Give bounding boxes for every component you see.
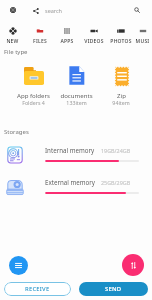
button[interactable]: NEW: [0, 24, 26, 44]
staticText: NEW: [6, 38, 19, 44]
staticText: File type: [4, 48, 28, 56]
staticText: 94item: [112, 99, 130, 106]
button[interactable]: APPS: [53, 24, 80, 44]
button[interactable]: RECEIVE: [4, 282, 71, 296]
button[interactable]: PHOTOS: [107, 24, 134, 44]
staticText: FILES: [33, 38, 47, 44]
button[interactable]: documents: [52, 62, 100, 106]
button[interactable]: Share: [31, 6, 41, 16]
staticText: VIDEOS: [84, 38, 104, 44]
button[interactable]: Internal memory: [0, 145, 152, 171]
staticText: 19GB/24GB: [101, 147, 131, 154]
button[interactable]: Zip: [97, 62, 145, 106]
button[interactable]: App folders: [9, 62, 57, 106]
staticText: Internal memory: [45, 146, 95, 154]
button[interactable]: FILES: [26, 24, 53, 44]
button[interactable]: SEND: [79, 282, 148, 296]
staticText: External memory: [45, 178, 96, 186]
staticText: SEND: [105, 285, 122, 293]
staticText: search: [45, 7, 63, 14]
staticText: Storages: [4, 128, 29, 136]
button[interactable]: Menu: [9, 256, 28, 275]
staticText: Folders 4: [22, 99, 45, 106]
staticText: 133item: [66, 99, 87, 106]
button[interactable]: Transfer: [122, 254, 144, 276]
staticText: APPS: [60, 38, 74, 44]
button[interactable]: External memory: [0, 177, 152, 203]
staticText: RECEIVE: [25, 285, 50, 293]
staticText: PHOTOS: [110, 38, 132, 44]
button[interactable]: MUSIC: [134, 24, 151, 44]
staticText: 25GB/29GB: [101, 179, 131, 186]
button[interactable]: Settings: [8, 5, 18, 15]
staticText: MUSIC: [134, 38, 151, 44]
button[interactable]: VIDEOS: [80, 24, 107, 44]
button[interactable]: Search: [132, 5, 142, 15]
staticText: App folders: [17, 91, 50, 99]
staticText: Zip: [117, 91, 126, 99]
staticText: documents: [60, 91, 93, 99]
